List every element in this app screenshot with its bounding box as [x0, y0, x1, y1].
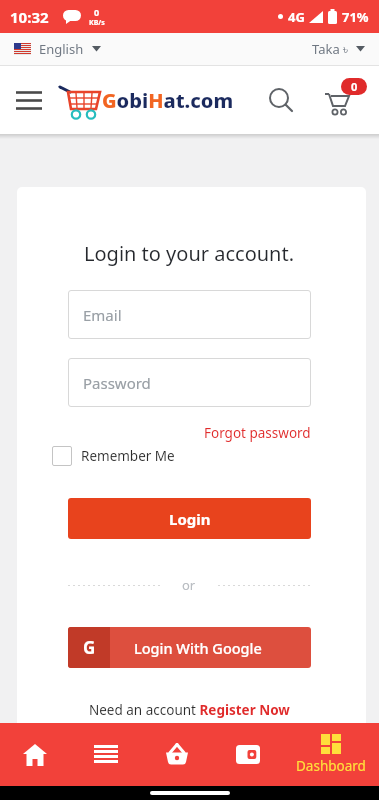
button[interactable]: Login	[68, 498, 311, 539]
staticText: KB/s	[89, 18, 105, 28]
button[interactable]	[10, 81, 48, 119]
button[interactable]: Need an account Register Now	[89, 701, 290, 719]
button[interactable]: Remember Me	[52, 446, 175, 466]
staticText: 0	[351, 79, 358, 94]
staticText: Login	[169, 509, 211, 529]
staticText: English	[39, 40, 84, 58]
staticText: 4G	[288, 8, 305, 26]
button[interactable]	[261, 80, 301, 120]
staticText: 10:32	[10, 7, 49, 27]
staticText: Login to your account.	[84, 240, 295, 267]
staticText: or	[182, 576, 196, 594]
button[interactable]: English	[14, 40, 101, 58]
staticText: Remember Me	[81, 447, 175, 465]
staticText: Taka ৳	[312, 40, 349, 58]
staticText: Login With Google	[134, 638, 262, 658]
button[interactable]: Forgot password	[204, 424, 311, 442]
button[interactable]: G	[68, 627, 311, 668]
button[interactable]	[0, 723, 70, 786]
staticText: GobiHat.com	[102, 87, 234, 114]
button[interactable]: Password	[68, 358, 311, 407]
button[interactable]: Email	[68, 290, 311, 339]
button[interactable]	[70, 723, 141, 786]
staticText: 71%	[342, 8, 369, 26]
staticText: Dashboard	[296, 757, 366, 775]
button[interactable]: 0	[323, 78, 367, 122]
staticText: 0	[94, 6, 100, 18]
staticText: Email	[83, 305, 122, 325]
button[interactable]	[141, 723, 212, 786]
button[interactable]: Dashboard	[283, 723, 379, 786]
staticText: Password	[83, 373, 151, 393]
button[interactable]	[212, 723, 283, 786]
button[interactable]: Taka ৳	[312, 40, 365, 58]
button[interactable]: GobiHat.com	[58, 81, 234, 119]
staticText: G	[83, 636, 96, 659]
